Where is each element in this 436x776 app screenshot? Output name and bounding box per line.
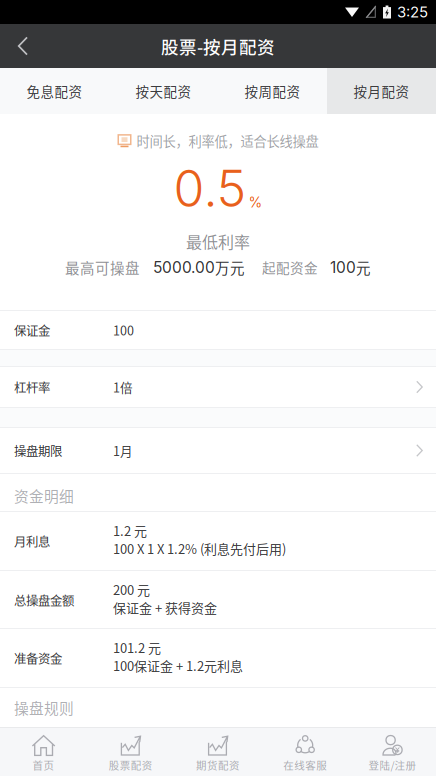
- staticText: 操盘期限: [14, 441, 62, 459]
- staticText: 总操盘金额: [14, 591, 74, 609]
- button[interactable]: 按天配资: [109, 68, 218, 114]
- staticText: 1.2 元: [113, 521, 147, 540]
- staticText: 按周配资: [244, 81, 300, 101]
- staticText: 股票配资: [109, 757, 153, 773]
- button[interactable]: 首页: [0, 727, 87, 776]
- staticText: 1月: [113, 441, 133, 460]
- button[interactable]: 免息配资: [0, 68, 109, 114]
- staticText: 万元: [215, 257, 245, 278]
- button[interactable]: 保证金: [0, 311, 436, 349]
- staticText: 登陆/注册: [368, 757, 416, 773]
- staticText: 资金明细: [14, 485, 74, 506]
- button[interactable]: 期货配资: [174, 727, 262, 776]
- staticText: 期货配资: [196, 757, 240, 773]
- staticText: 操盘规则: [14, 697, 74, 718]
- staticText: 保证金: [14, 321, 50, 339]
- staticText: 免息配资: [26, 81, 82, 101]
- staticText: 起配资金: [262, 258, 318, 277]
- staticText: 时间长，利率低，适合长线操盘: [136, 131, 318, 150]
- staticText: 最高可操盘: [65, 257, 140, 278]
- staticText: %: [248, 194, 262, 211]
- button[interactable]: 按周配资: [218, 68, 327, 114]
- button[interactable]: 按月配资: [327, 68, 436, 114]
- staticText: 按天配资: [135, 81, 191, 101]
- staticText: 3:25: [397, 3, 428, 21]
- staticText: 杠杆率: [14, 378, 50, 396]
- button[interactable]: 杠杆率: [0, 367, 436, 407]
- staticText: 按月配资: [353, 81, 409, 101]
- staticText: 101.2 元: [113, 638, 161, 657]
- staticText: 100保证金 + 1.2元利息: [113, 656, 243, 675]
- button[interactable]: Back: [0, 24, 46, 68]
- staticText: 在线客服: [283, 757, 327, 773]
- staticText: 保证金 + 获得资金: [113, 598, 217, 617]
- staticText: 0.5: [173, 158, 246, 219]
- staticText: 元: [356, 257, 371, 278]
- staticText: 准备资金: [14, 649, 62, 667]
- staticText: 100 X 1 X 1.2% (利息先付后用): [113, 539, 286, 558]
- staticText: 5000.00: [153, 258, 215, 277]
- staticText: 最低利率: [186, 230, 250, 253]
- staticText: 股票-按月配资: [161, 33, 275, 59]
- staticText: 月利息: [14, 532, 50, 550]
- button[interactable]: 登陆/注册: [349, 727, 436, 776]
- staticText: 200 元: [113, 580, 150, 599]
- button[interactable]: 在线客服: [262, 727, 349, 776]
- button[interactable]: 操盘期限: [0, 428, 436, 473]
- staticText: 1倍: [113, 378, 133, 396]
- button[interactable]: 股票配资: [87, 727, 174, 776]
- staticText: 100: [330, 258, 356, 277]
- staticText: 首页: [33, 757, 55, 773]
- staticText: 100: [113, 321, 134, 339]
